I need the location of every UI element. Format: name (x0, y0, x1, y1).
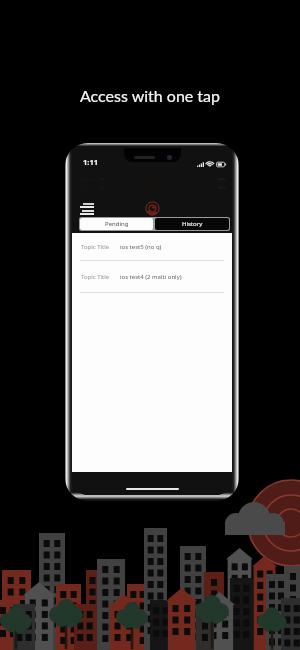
staticText: 1:03 PM (139, 186, 158, 193)
button[interactable]: Open navigation menu (80, 203, 95, 215)
staticText: ios test5 (no q) (120, 243, 162, 251)
staticText: Topic Title (81, 243, 110, 251)
button[interactable]: Pending (80, 218, 153, 230)
staticText: 1:11 (83, 157, 98, 167)
staticText: Access with one tap (0, 86, 300, 105)
other: App logo (145, 201, 160, 216)
staticText: Pending (105, 220, 129, 228)
staticText: ios test4 (2 malti only) (120, 273, 182, 281)
staticText: History (182, 220, 203, 228)
button[interactable]: Topic Title (72, 233, 232, 261)
button[interactable]: History (155, 218, 229, 230)
staticText: Topic Title (81, 273, 110, 281)
button[interactable]: Topic Title (72, 261, 232, 293)
